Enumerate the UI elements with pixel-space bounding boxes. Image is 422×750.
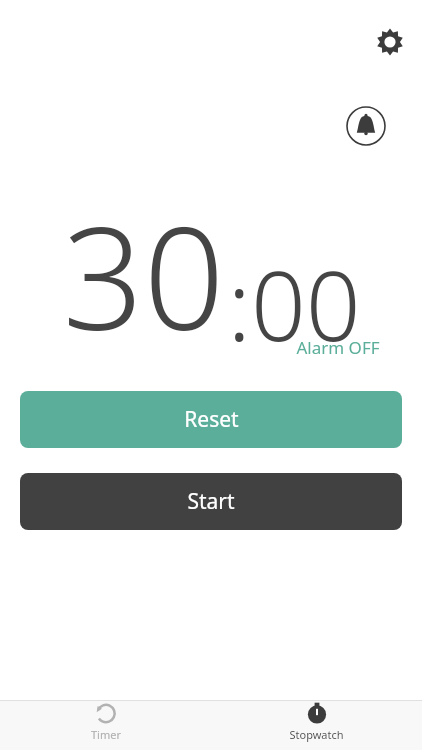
button[interactable]: Reset [20, 391, 402, 448]
staticText: Start [187, 487, 235, 516]
button[interactable]: Start [20, 473, 402, 530]
staticText: 30 [62, 178, 225, 371]
button[interactable]: Alarm [346, 106, 386, 146]
staticText: Timer [91, 727, 121, 742]
button[interactable]: Timer [0, 701, 211, 742]
button[interactable]: Settings [370, 22, 410, 62]
staticText: Stopwatch [289, 727, 344, 742]
staticText: Alarm OFF [296, 336, 380, 359]
staticText: :00 [227, 238, 361, 369]
staticText: Reset [184, 405, 239, 434]
button[interactable]: Stopwatch [211, 701, 422, 742]
